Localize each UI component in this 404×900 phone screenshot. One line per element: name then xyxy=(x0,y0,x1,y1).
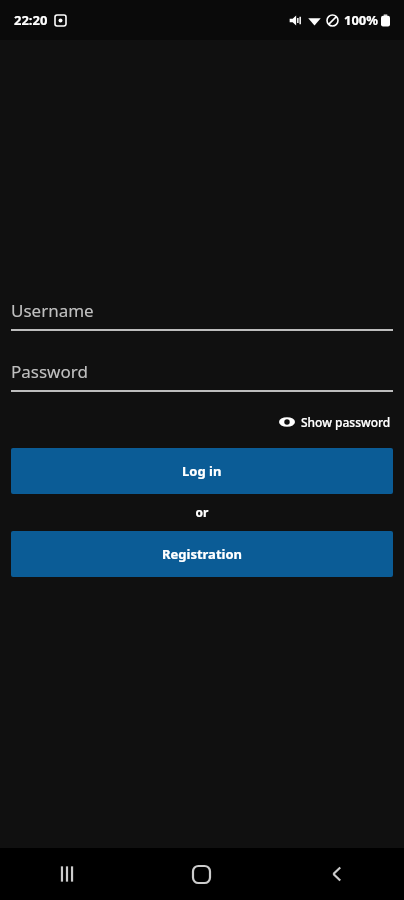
staticText: Show password xyxy=(301,414,391,430)
staticText: Log in xyxy=(182,462,222,480)
button[interactable]: Back xyxy=(269,848,404,900)
button[interactable]: Home xyxy=(134,848,269,900)
button[interactable]: Log in xyxy=(11,448,393,494)
staticText: 22:20 xyxy=(14,11,48,29)
staticText: Registration xyxy=(162,545,243,563)
button[interactable]: Username xyxy=(11,295,393,331)
staticText: Password xyxy=(11,360,88,383)
button[interactable]: Show password xyxy=(277,410,393,434)
button[interactable]: Registration xyxy=(11,531,393,577)
staticText: or xyxy=(11,504,393,520)
button[interactable]: Recents xyxy=(0,848,134,900)
staticText: Username xyxy=(11,299,94,322)
button[interactable]: Password xyxy=(11,356,393,392)
staticText: 100% xyxy=(344,11,379,29)
